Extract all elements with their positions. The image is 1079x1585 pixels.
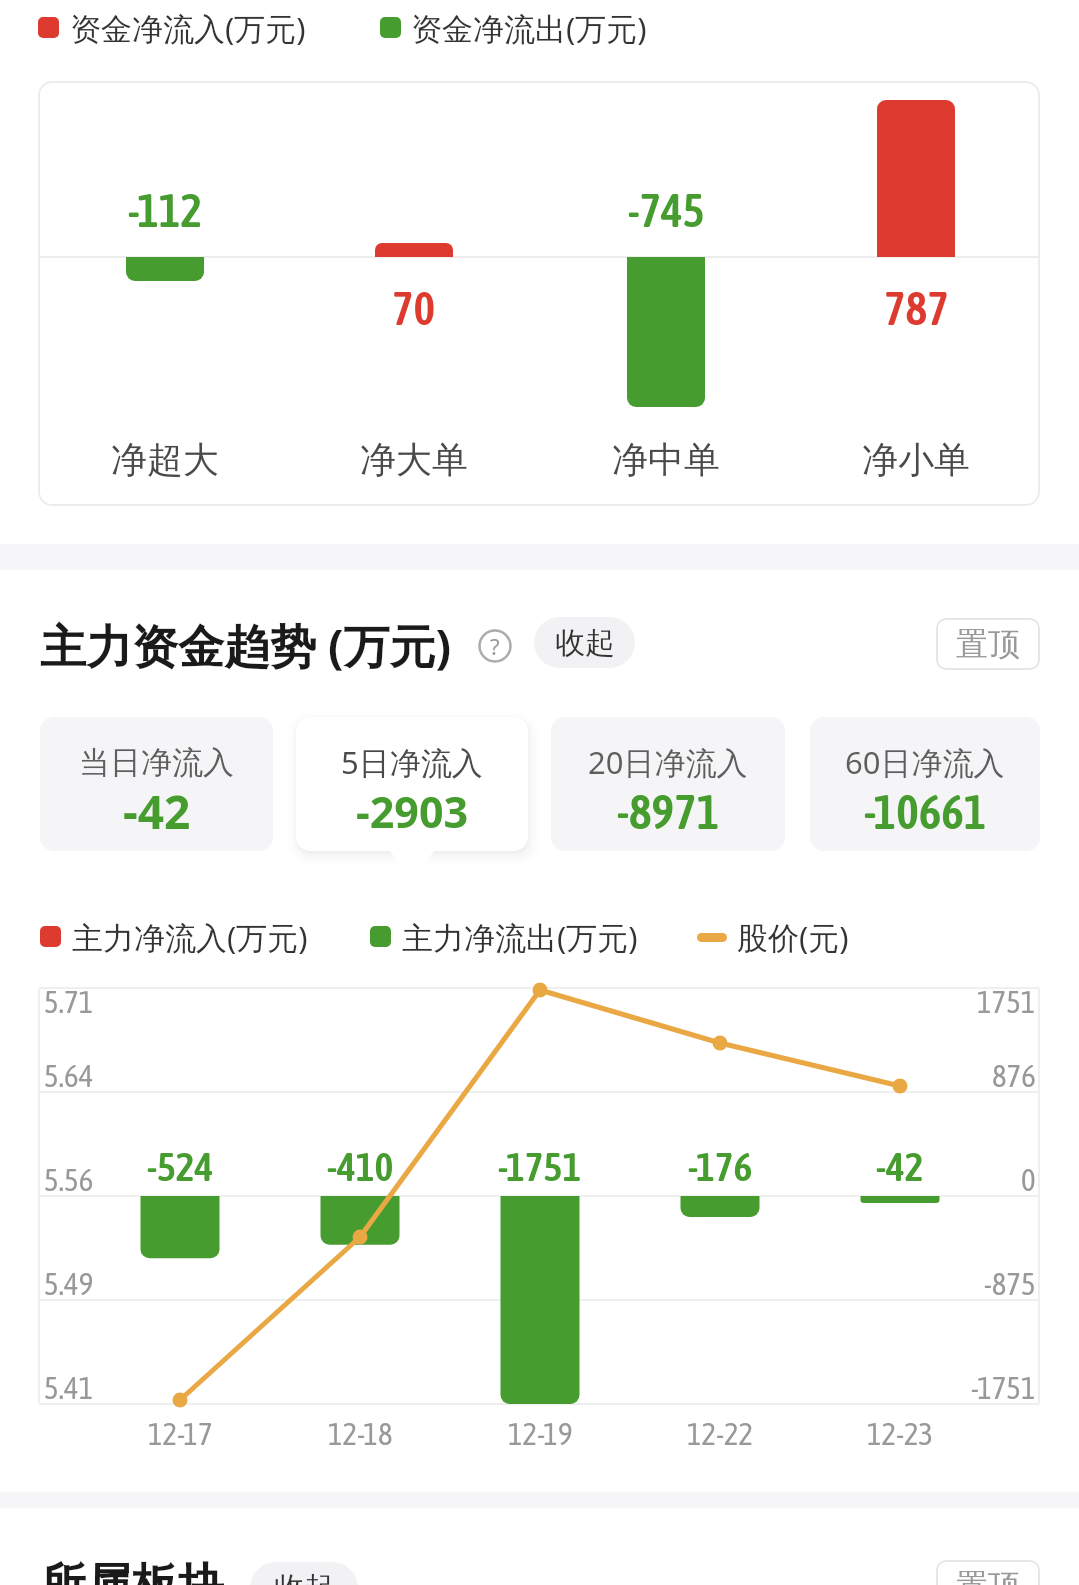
staticText: 5日净流入 (341, 741, 483, 783)
staticText: -10661 (864, 784, 987, 839)
staticText: 12-17 (148, 1416, 213, 1452)
staticText: 置顶 (956, 1566, 1020, 1585)
staticText: -1751 (498, 1144, 582, 1190)
staticText: -875 (984, 1266, 1036, 1302)
staticText: 股价(元) (737, 916, 849, 958)
staticText: 60日净流入 (845, 741, 1005, 783)
staticText: 所属板块 (40, 1557, 224, 1585)
button[interactable]: 当日净流入 (40, 717, 273, 851)
button[interactable]: 60日净流入 (810, 717, 1040, 851)
staticText: 净中单 (612, 437, 720, 482)
staticText: -112 (128, 184, 203, 237)
button[interactable]: 置顶 (936, 1560, 1040, 1585)
staticText: 0 (1021, 1162, 1036, 1198)
staticText: 当日净流入 (79, 743, 234, 782)
staticText: 主力净流入(万元) (72, 916, 308, 958)
staticText: 876 (992, 1058, 1036, 1094)
staticText: 主力净流出(万元) (402, 916, 638, 958)
staticText: 5.71 (44, 984, 94, 1020)
staticText: 20日净流入 (588, 741, 748, 783)
staticText: 5.56 (44, 1162, 94, 1198)
staticText: 5.41 (44, 1370, 94, 1406)
button[interactable]: 5日净流入 (296, 717, 528, 851)
staticText: 置顶 (956, 624, 1020, 664)
button[interactable]: 收起 (250, 1562, 358, 1585)
staticText: -42 (876, 1144, 924, 1190)
button[interactable] (478, 629, 512, 663)
staticText: 净小单 (862, 437, 970, 482)
button[interactable]: 20日净流入 (551, 717, 785, 851)
staticText: 12-23 (867, 1416, 934, 1452)
staticText: -8971 (617, 784, 720, 839)
staticText: 70 (392, 282, 436, 335)
button[interactable]: 置顶 (936, 618, 1040, 670)
staticText: 资金净流入(万元) (70, 7, 306, 49)
staticText: 净超大 (111, 437, 219, 482)
staticText: 5.64 (44, 1058, 94, 1094)
staticText: 净大单 (360, 437, 468, 482)
staticText: -524 (147, 1144, 214, 1190)
staticText: 主力资金趋势 (万元) (40, 614, 452, 677)
staticText: 5.49 (44, 1266, 94, 1302)
staticText: 收起 (555, 624, 615, 662)
staticText: -2903 (356, 782, 469, 841)
staticText: 12-22 (687, 1416, 754, 1452)
button[interactable]: 收起 (534, 617, 635, 668)
staticText: 12-19 (508, 1416, 573, 1452)
staticText: 收起 (274, 1569, 334, 1585)
staticText: -410 (327, 1144, 394, 1190)
staticText: 资金净流出(万元) (411, 7, 647, 49)
staticText: -176 (688, 1144, 753, 1190)
staticText: ? (490, 631, 500, 661)
staticText: 787 (884, 282, 949, 335)
staticText: 12-18 (328, 1416, 393, 1452)
staticText: -745 (628, 184, 705, 237)
staticText: -1751 (971, 1370, 1036, 1406)
staticText: 1751 (977, 984, 1036, 1020)
staticText: -42 (123, 780, 191, 843)
